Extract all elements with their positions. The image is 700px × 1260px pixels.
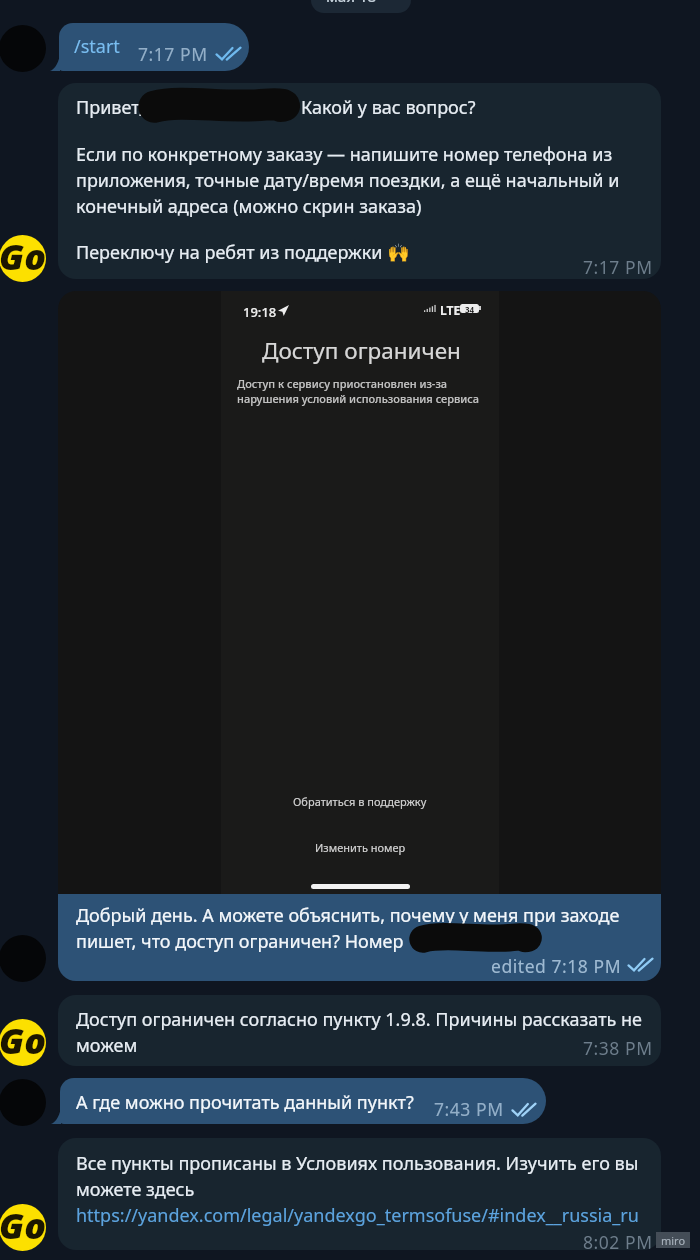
button[interactable]: Добрый день. А можете объяснить, почему …: [58, 894, 661, 981]
staticText: 7:17 PM: [583, 255, 653, 279]
staticText: 7:17 PM: [138, 42, 208, 66]
button[interactable]: Доступ ограничен согласно пункту 1.9.8. …: [58, 995, 661, 1066]
staticText: 7:43 PM: [434, 1097, 504, 1121]
staticText: А где можно прочитать данный пункт?: [76, 1090, 414, 1115]
staticText: Привет,: [76, 95, 144, 120]
staticText: Доступ ограничен: [262, 335, 461, 366]
staticText: Обратиться в поддержку: [293, 794, 427, 809]
staticText: 19:18: [243, 303, 277, 321]
staticText: Доступ к сервису приостановлен из-за нар…: [237, 376, 480, 406]
staticText: Go: [0, 1019, 46, 1063]
staticText: Переключу на ребят из поддержки 🙌: [76, 240, 410, 265]
staticText: 7:38 PM: [583, 1036, 653, 1060]
staticText: Добрый день. А можете объяснить, почему …: [76, 903, 620, 954]
staticText: мая 18: [326, 0, 377, 6]
staticText: Все пункты прописаны в Условиях пользова…: [76, 1151, 639, 1202]
staticText: Go: [0, 235, 46, 279]
staticText: /start: [74, 34, 120, 59]
staticText: edited 7:18 PM: [491, 954, 622, 978]
button[interactable]: Screenshot attachment: [58, 291, 661, 895]
staticText: 8:02 PM: [583, 1230, 653, 1250]
staticText: Какой у вас вопрос?: [301, 95, 476, 120]
staticText: Go: [0, 1204, 46, 1248]
staticText: Изменить номер: [315, 840, 406, 855]
button[interactable]: Все пункты прописаны в Условиях пользова…: [58, 1138, 661, 1250]
button[interactable]: /start: [50, 23, 249, 71]
button[interactable]: А где можно прочитать данный пункт?: [51, 1078, 546, 1124]
staticText: miro: [661, 1233, 686, 1248]
button[interactable]: [311, 0, 411, 13]
button[interactable]: Привет,: [58, 83, 661, 279]
staticText: Доступ ограничен согласно пункту 1.9.8. …: [76, 1007, 643, 1058]
staticText: Если по конкретному заказу — напишите но…: [76, 142, 620, 219]
staticText: 34: [465, 304, 475, 313]
staticText: LTE: [440, 302, 461, 318]
button[interactable]: https://yandex.com/legal/yandexgo_termso…: [76, 1203, 639, 1228]
